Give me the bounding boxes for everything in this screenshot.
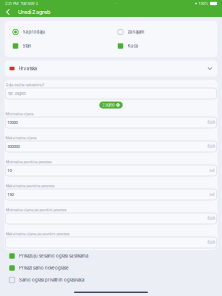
staticText: EUR: [207, 120, 214, 124]
staticText: 10: [7, 168, 11, 173]
staticText: Stan: [22, 43, 31, 48]
staticText: EUR: [207, 144, 214, 148]
staticText: Tue Nov 3: [20, 1, 37, 6]
staticText: 150: [7, 192, 13, 197]
staticText: ···: [115, 1, 118, 6]
staticText: Samo oglasi privatnih oglašivača: [19, 277, 84, 282]
staticText: 2:21 PM: [5, 1, 18, 6]
staticText: na prodaju: [22, 29, 45, 34]
staticText: 10000: [7, 120, 17, 125]
staticText: Prikaži samo nove oglase: [19, 265, 68, 270]
staticText: 500000: [7, 144, 19, 149]
staticText: Uredi Zagreb: [18, 9, 50, 15]
button[interactable]: Back: [3, 7, 15, 17]
staticText: Minimalna cijena po površini prostora: [5, 208, 66, 212]
button[interactable]: na prodaju: [12, 25, 117, 39]
button[interactable]: Zagreb: [99, 101, 123, 108]
staticText: Prikazuju se samo oglasi sa slikama: [19, 253, 88, 258]
staticText: Kuća: [127, 43, 137, 48]
staticText: za najam: [127, 29, 144, 34]
staticText: ✕: [116, 103, 119, 107]
staticText: Gdje tražite nekretninu?: [5, 83, 44, 87]
button[interactable]: Samo oglasi privatnih oglašivača: [9, 274, 213, 286]
staticText: Maksimalna cijena po površini prostora: [5, 232, 69, 236]
staticText: 100%: [198, 1, 208, 6]
button[interactable]: Hrvatska: [4, 60, 217, 76]
staticText: EUR: [207, 216, 214, 220]
staticText: Hrvatska: [18, 66, 37, 71]
staticText: npr. Zagreb: [7, 91, 25, 96]
staticText: m2: [209, 192, 214, 196]
button[interactable]: Prikazuju se samo oglasi sa slikama: [9, 250, 213, 262]
button[interactable]: Prikaži samo nove oglase: [9, 262, 213, 274]
staticText: Maksimalna cijena: [5, 136, 36, 140]
button[interactable]: Stan: [12, 39, 117, 53]
staticText: Maksimalna površina prostora: [5, 184, 54, 188]
staticText: m2: [209, 168, 214, 172]
staticText: EUR: [207, 240, 214, 244]
button[interactable]: Kuća: [117, 39, 209, 53]
staticText: Minimalna cijena: [5, 112, 33, 116]
staticText: Minimalna površina prostora: [5, 160, 51, 164]
button[interactable]: za najam: [117, 25, 209, 39]
staticText: Zagreb: [102, 103, 114, 107]
